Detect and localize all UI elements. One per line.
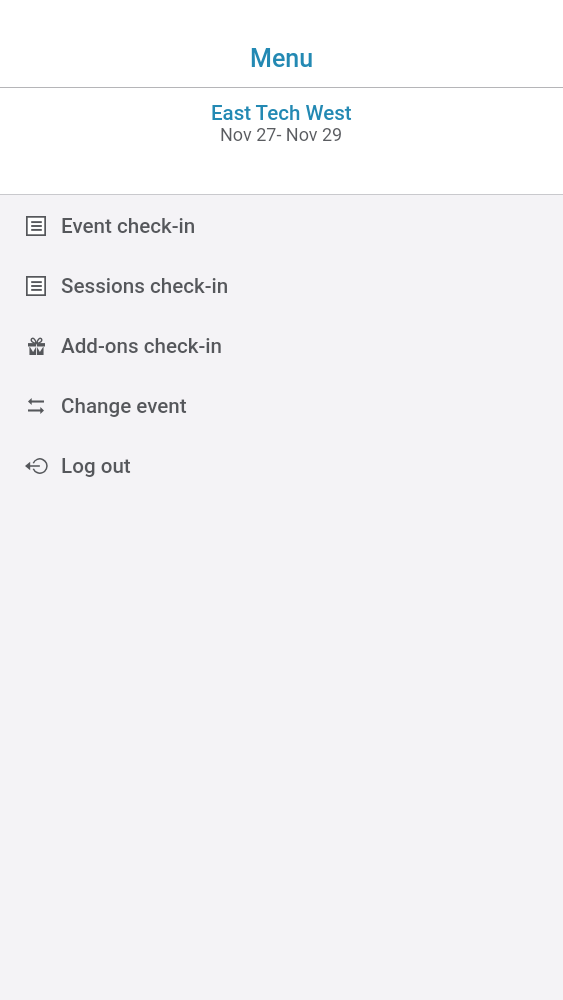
staticText: Event check-in (61, 214, 196, 238)
staticText: Log out (61, 454, 131, 478)
staticText: Sessions check-in (61, 274, 229, 298)
staticText: Add-ons check-in (61, 334, 222, 358)
button[interactable]: Sessions check-in (0, 256, 563, 316)
button[interactable]: Event check-in (0, 196, 563, 256)
staticText: Menu (250, 44, 314, 73)
button[interactable]: Log out (0, 436, 563, 496)
staticText: Change event (61, 394, 187, 418)
button[interactable]: Add-ons check-in (0, 316, 563, 376)
staticText: Nov 27- Nov 29 (220, 124, 343, 145)
staticText: East Tech West (211, 101, 352, 125)
button[interactable]: Change event (0, 376, 563, 436)
